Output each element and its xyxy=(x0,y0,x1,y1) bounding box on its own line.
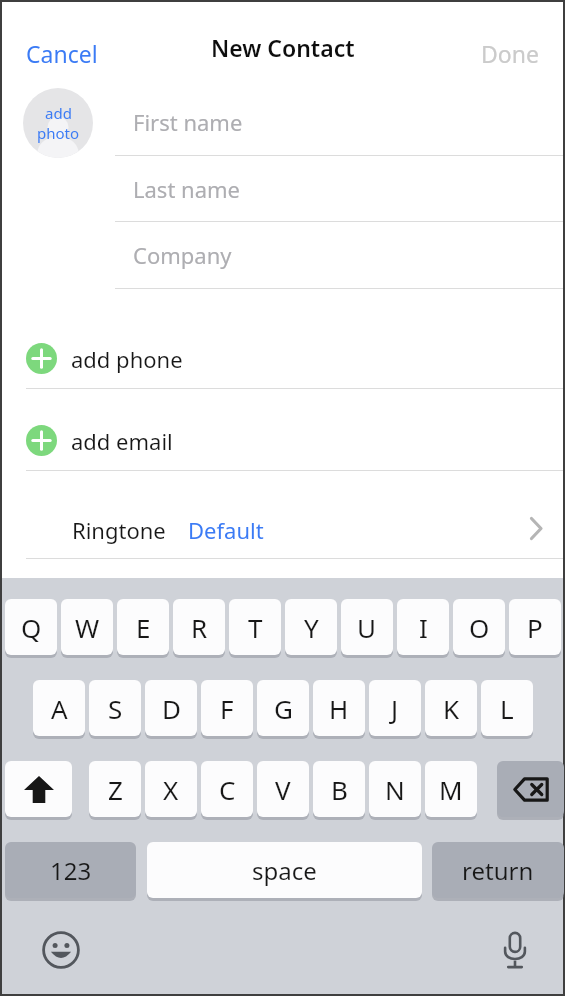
staticText: H xyxy=(329,691,349,726)
button[interactable]: E xyxy=(117,599,169,655)
button[interactable]: M xyxy=(425,761,477,817)
staticText: D xyxy=(162,691,181,726)
button[interactable]: Done xyxy=(473,30,547,77)
staticText: Done xyxy=(481,38,539,69)
button[interactable]: R xyxy=(173,599,225,655)
staticText: Default xyxy=(188,515,264,545)
staticText: Y xyxy=(304,610,319,645)
button[interactable]: Add photo xyxy=(23,88,93,158)
button[interactable]: D xyxy=(145,680,197,736)
button[interactable]: Company xyxy=(115,222,563,288)
staticText: K xyxy=(443,691,460,726)
staticText: New Contact xyxy=(211,32,355,63)
staticText: T xyxy=(248,610,263,645)
staticText: X xyxy=(163,772,179,807)
button[interactable]: A xyxy=(33,680,85,736)
button[interactable]: Emoji keyboard xyxy=(37,926,85,974)
button[interactable]: 123 xyxy=(5,842,136,898)
staticText: L xyxy=(500,691,514,726)
staticText: I xyxy=(419,610,428,645)
staticText: O xyxy=(469,610,490,645)
staticText: U xyxy=(357,610,377,645)
button[interactable]: S xyxy=(89,680,141,736)
staticText: S xyxy=(108,691,123,726)
staticText: R xyxy=(191,610,208,645)
staticText: G xyxy=(274,691,293,726)
button[interactable]: L xyxy=(481,680,533,736)
button[interactable]: I xyxy=(397,599,449,655)
button[interactable]: add phone xyxy=(2,330,563,387)
staticText: W xyxy=(75,610,100,645)
button[interactable]: C xyxy=(201,761,253,817)
staticText: E xyxy=(136,610,151,645)
staticText: Last name xyxy=(133,174,240,204)
staticText: Z xyxy=(108,772,123,807)
staticText: Cancel xyxy=(26,38,98,69)
staticText: 123 xyxy=(50,854,92,887)
button[interactable]: B xyxy=(313,761,365,817)
button[interactable]: Q xyxy=(5,599,57,655)
button[interactable]: V xyxy=(257,761,309,817)
button[interactable]: space xyxy=(147,842,422,898)
staticText: C xyxy=(219,772,236,807)
staticText: J xyxy=(391,691,399,726)
button[interactable]: Y xyxy=(285,599,337,655)
button[interactable]: add email xyxy=(2,412,563,469)
button[interactable]: Ringtone xyxy=(2,499,563,558)
button[interactable]: X xyxy=(145,761,197,817)
button[interactable]: O xyxy=(453,599,505,655)
staticText: F xyxy=(220,691,234,726)
button[interactable]: W xyxy=(61,599,113,655)
button[interactable]: Last name xyxy=(115,156,563,221)
staticText: P xyxy=(527,610,543,645)
button[interactable]: N xyxy=(369,761,421,817)
staticText: N xyxy=(385,772,405,807)
staticText: V xyxy=(275,772,291,807)
staticText: B xyxy=(331,772,348,807)
staticText: Q xyxy=(21,610,42,645)
staticText: photo xyxy=(37,123,80,143)
button[interactable]: Z xyxy=(89,761,141,817)
button[interactable]: U xyxy=(341,599,393,655)
button[interactable]: Dictation xyxy=(491,926,539,974)
staticText: add xyxy=(45,103,72,123)
staticText: M xyxy=(439,772,463,807)
button[interactable]: F xyxy=(201,680,253,736)
staticText: Ringtone xyxy=(72,515,166,545)
staticText: First name xyxy=(133,107,243,137)
button[interactable]: K xyxy=(425,680,477,736)
staticText: space xyxy=(252,854,317,887)
button[interactable]: J xyxy=(369,680,421,736)
button[interactable]: Backspace xyxy=(497,761,564,817)
button[interactable]: P xyxy=(509,599,561,655)
staticText: add phone xyxy=(71,344,183,374)
button[interactable]: Shift xyxy=(5,761,72,817)
button[interactable]: G xyxy=(257,680,309,736)
staticText: add email xyxy=(71,426,173,456)
button[interactable]: T xyxy=(229,599,281,655)
staticText: A xyxy=(51,691,68,726)
button[interactable]: Cancel xyxy=(18,30,106,77)
staticText: Company xyxy=(133,240,232,270)
staticText: return xyxy=(462,854,534,887)
button[interactable]: H xyxy=(313,680,365,736)
button[interactable]: return xyxy=(432,842,564,898)
button[interactable]: First name xyxy=(115,89,563,155)
